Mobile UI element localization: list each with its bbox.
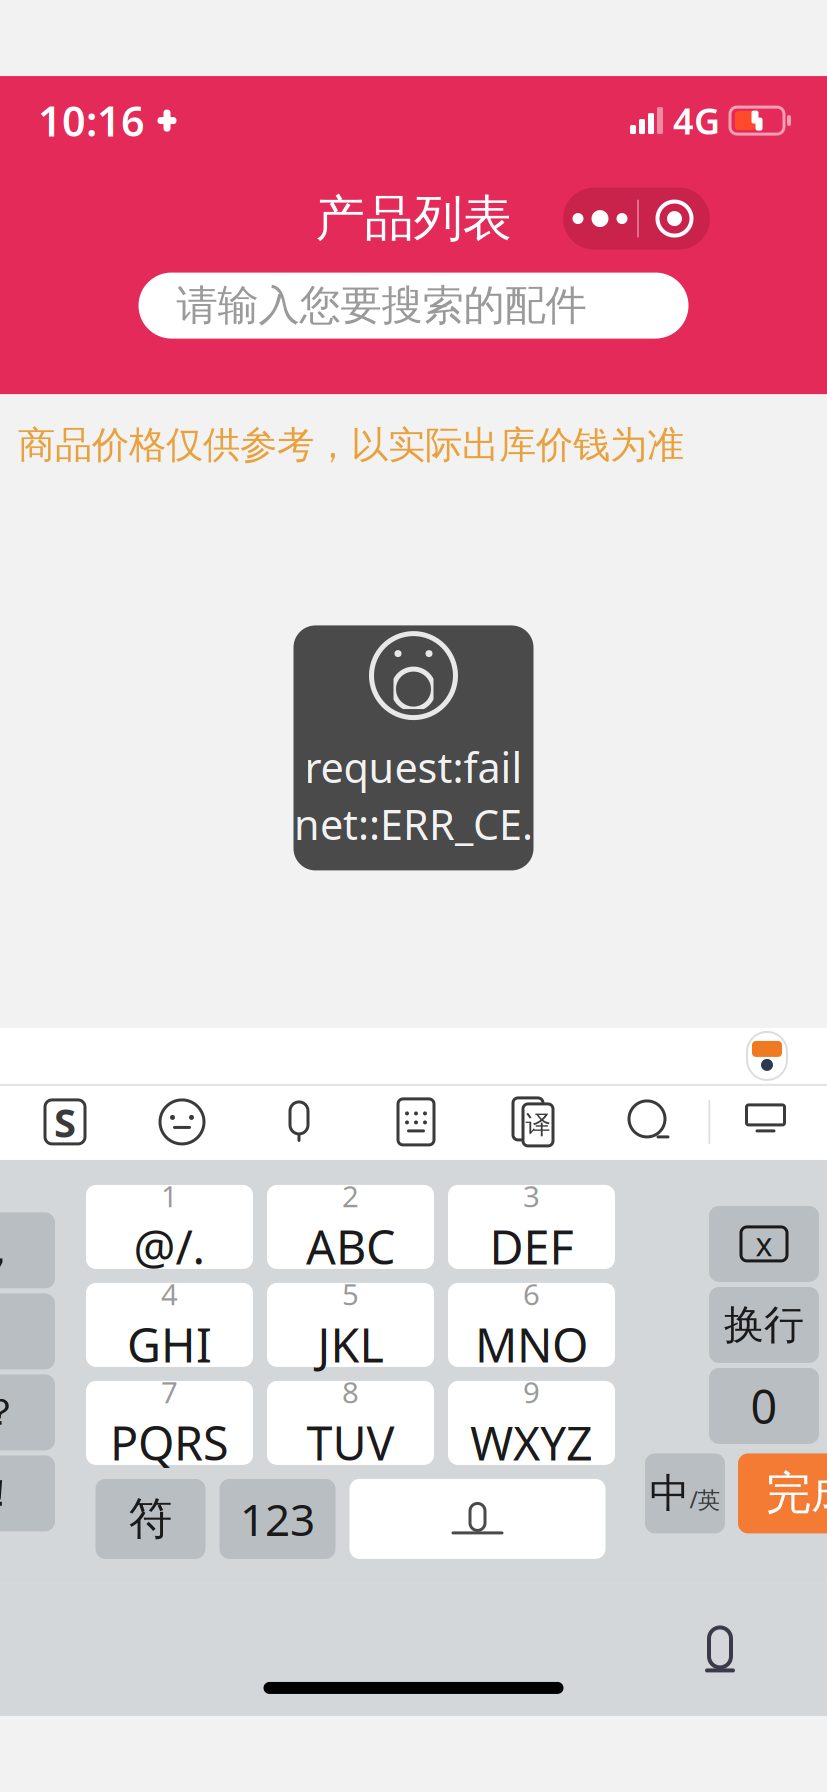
button[interactable]: 123: [212, 1472, 342, 1566]
button[interactable]: Dictation: [685, 1615, 755, 1685]
staticText: PQRS: [110, 1411, 229, 1473]
button[interactable]: ，: [0, 1210, 63, 1291]
staticText: MNO: [475, 1313, 588, 1375]
staticText: x: [755, 1223, 772, 1265]
staticText: ！: [0, 1470, 18, 1516]
button[interactable]: 6: [441, 1276, 622, 1374]
staticText: 8: [342, 1372, 359, 1411]
staticText: ？: [0, 1389, 18, 1435]
staticText: 4G: [673, 97, 720, 144]
button[interactable]: 符: [88, 1472, 212, 1566]
staticText: GHI: [127, 1313, 212, 1375]
button[interactable]: 8: [260, 1374, 441, 1472]
staticText: request:fail: [304, 740, 522, 794]
staticText: ABC: [306, 1215, 395, 1277]
button[interactable]: 4: [79, 1276, 260, 1374]
button[interactable]: Sogou keyboard: [6, 1084, 123, 1160]
button[interactable]: Emoji: [123, 1084, 240, 1160]
staticText: 0: [750, 1375, 777, 1437]
staticText: /英: [689, 1484, 720, 1514]
staticText: 请输入您要搜索的配件: [176, 280, 586, 331]
staticText: ，: [0, 1227, 18, 1273]
staticText: DEF: [489, 1215, 573, 1277]
staticText: 9: [523, 1372, 540, 1411]
button[interactable]: 。: [0, 1291, 63, 1372]
staticText: WXYZ: [470, 1411, 593, 1473]
button[interactable]: Delete: [701, 1203, 827, 1284]
button[interactable]: 3: [441, 1178, 622, 1276]
button[interactable]: 完成: [732, 1446, 827, 1540]
button[interactable]: 换行: [701, 1284, 827, 1365]
staticText: 符: [128, 1492, 172, 1546]
staticText: 6: [523, 1274, 540, 1313]
button[interactable]: 5: [260, 1276, 441, 1374]
button[interactable]: 9: [441, 1374, 622, 1472]
button[interactable]: Input method assistant: [739, 1028, 795, 1084]
staticText: 译: [525, 1109, 550, 1140]
button[interactable]: Voice input: [240, 1084, 357, 1160]
button[interactable]: ！: [0, 1453, 63, 1534]
button[interactable]: 7: [79, 1374, 260, 1472]
staticText: 5: [342, 1274, 359, 1313]
staticText: JKL: [317, 1313, 383, 1375]
button[interactable]: Search accessories: [138, 273, 688, 339]
staticText: 123: [240, 1490, 315, 1548]
staticText: 10:16: [38, 93, 145, 148]
staticText: 商品价格仅供参考，以实际出库价钱为准: [18, 422, 684, 468]
button[interactable]: Keyboard layout: [357, 1084, 474, 1160]
button[interactable]: ？: [0, 1372, 63, 1453]
staticText: 4: [161, 1274, 178, 1313]
button[interactable]: 0: [701, 1365, 827, 1446]
staticText: 1: [161, 1176, 178, 1215]
staticText: 中: [649, 1469, 689, 1518]
staticText: 换行: [724, 1300, 804, 1349]
staticText: 2: [342, 1176, 359, 1215]
staticText: 完成: [766, 1466, 827, 1521]
button[interactable]: Switch Chinese English: [638, 1446, 732, 1540]
staticText: TUV: [306, 1411, 394, 1473]
button[interactable]: Translate: [474, 1084, 591, 1160]
staticText: 3: [523, 1176, 540, 1215]
staticText: 产品列表: [315, 188, 511, 249]
staticText: S: [54, 1095, 76, 1148]
staticText: net::ERR_CE...: [294, 796, 533, 906]
staticText: 7: [161, 1372, 178, 1411]
button[interactable]: Space, voice input: [342, 1472, 612, 1566]
button[interactable]: 2: [260, 1178, 441, 1276]
button[interactable]: Hide keyboard: [710, 1084, 820, 1160]
button[interactable]: 1: [79, 1178, 260, 1276]
button[interactable]: Search: [591, 1084, 708, 1160]
staticText: @/.: [133, 1215, 205, 1277]
button[interactable]: Mini program menu: [563, 188, 710, 250]
